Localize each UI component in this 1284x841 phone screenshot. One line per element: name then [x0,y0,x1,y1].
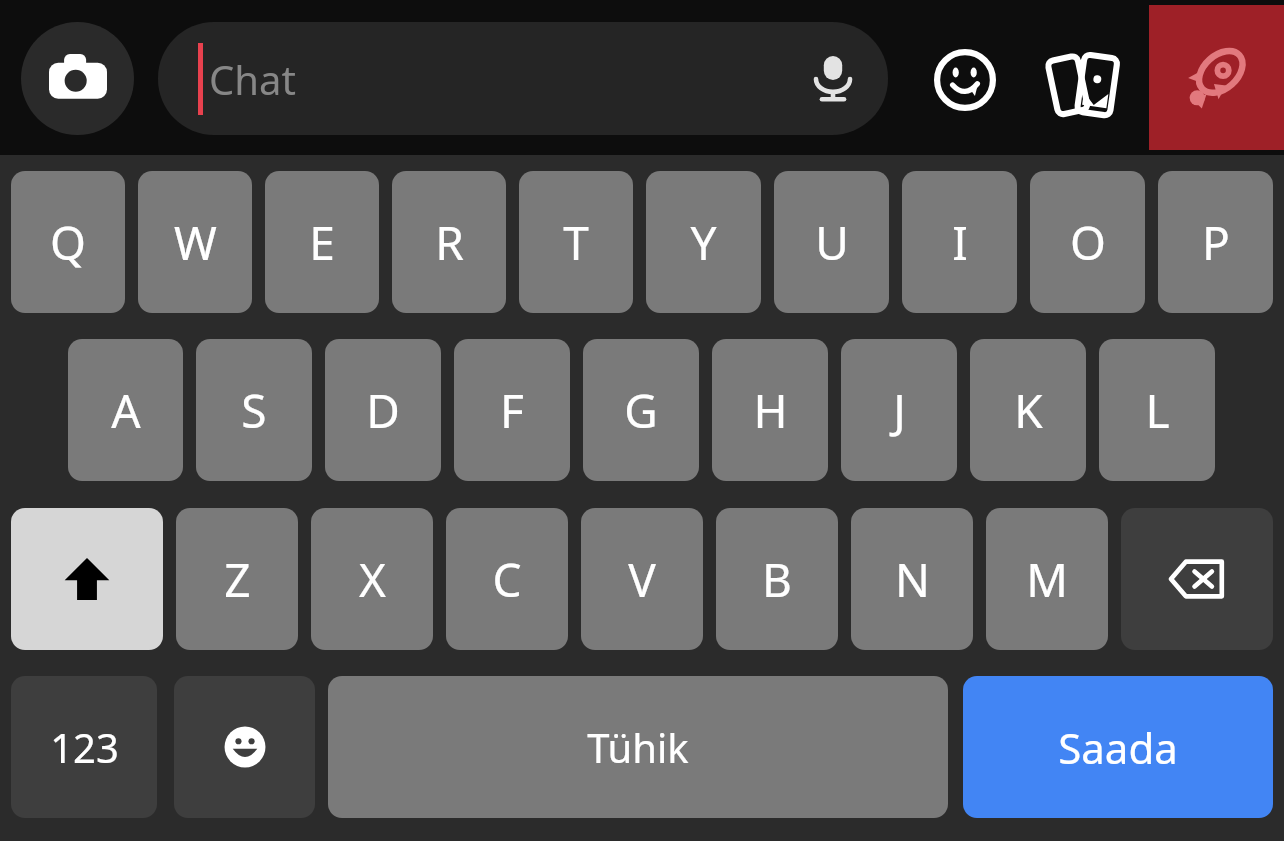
staticText: M [1026,548,1068,611]
button[interactable]: A [68,339,183,481]
staticText: J [893,379,906,442]
button[interactable]: F [454,339,570,481]
staticText: K [1014,379,1043,442]
button[interactable]: G [583,339,699,481]
button[interactable]: L [1099,339,1215,481]
staticText: S [241,379,267,442]
button[interactable]: Z [176,508,298,650]
staticText: H [753,379,788,442]
button[interactable]: Backspace [1121,508,1273,650]
staticText: G [624,379,658,442]
staticText: D [366,379,400,442]
button[interactable]: O [1030,171,1145,313]
button[interactable]: B [716,508,838,650]
button[interactable]: E [265,171,379,313]
button[interactable]: K [970,339,1086,481]
button[interactable]: N [851,508,973,650]
button[interactable]: W [138,171,252,313]
button[interactable]: J [841,339,957,481]
button[interactable]: M [986,508,1108,650]
button[interactable]: 123 [11,676,157,818]
button[interactable]: Camera [21,22,134,135]
button[interactable]: Shift [11,508,163,650]
staticText: C [492,548,522,611]
button[interactable]: Emoji [174,676,315,818]
button[interactable]: X [311,508,433,650]
staticText: P [1202,211,1230,274]
button[interactable]: Chat [158,22,888,135]
staticText: Z [224,548,251,611]
button[interactable]: T [519,171,633,313]
staticText: T [563,211,589,274]
staticText: R [435,211,464,274]
staticText: U [815,211,849,274]
staticText: Y [690,211,717,274]
button[interactable]: Tühik [328,676,948,818]
button[interactable]: H [712,339,828,481]
staticText: Saada [1058,719,1178,776]
button[interactable]: Stickers [915,30,1015,130]
button[interactable]: Voice input [788,34,878,124]
staticText: Chat [209,52,296,106]
button[interactable]: V [581,508,703,650]
button[interactable]: P [1158,171,1273,313]
button[interactable]: U [774,171,889,313]
staticText: O [1070,211,1106,274]
staticText: L [1145,379,1170,442]
button[interactable]: Y [646,171,761,313]
staticText: E [309,211,335,274]
staticText: Q [50,211,86,274]
staticText: F [500,379,524,442]
button[interactable]: S [196,339,312,481]
staticText: N [895,548,930,611]
button[interactable]: I [902,171,1017,313]
button[interactable]: C [446,508,568,650]
staticText: I [952,211,968,274]
staticText: A [111,379,141,442]
button[interactable]: D [325,339,441,481]
staticText: Tühik [587,720,689,774]
button[interactable]: Saada [963,676,1273,818]
button[interactable]: Send rocket [1149,5,1284,150]
staticText: X [359,548,386,611]
staticText: V [628,548,656,611]
staticText: W [174,211,217,274]
staticText: B [762,548,792,611]
staticText: 123 [50,720,119,774]
button[interactable]: Q [11,171,125,313]
button[interactable]: R [392,171,506,313]
button[interactable]: Cameos [1030,30,1140,140]
